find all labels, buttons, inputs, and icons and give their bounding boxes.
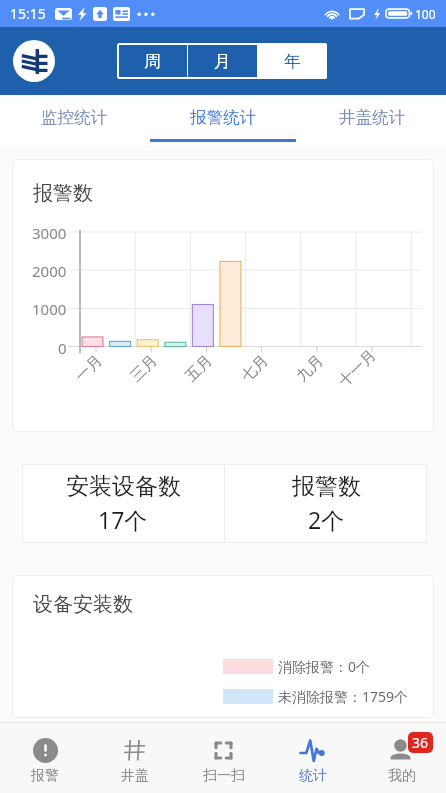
staticText: 报警 [31,767,59,785]
staticText: 周 [144,51,161,72]
button[interactable]: 监控统计 [0,95,148,145]
staticText: 设备安装数 [33,592,133,617]
staticText: 2个 [308,504,345,535]
staticText: 井盖统计 [339,107,405,128]
staticText: 年 [284,51,301,72]
button[interactable]: 井盖统计 [297,95,446,145]
button[interactable]: 报警统计 [148,95,297,145]
staticText: 五月 [182,351,216,386]
staticText: 三月 [127,351,161,386]
staticText: 3000 [32,223,67,243]
staticText: 七月 [238,351,272,386]
button[interactable]: 月 [188,43,257,79]
staticText: 2000 [32,261,67,281]
button[interactable]: 报警数 [225,464,427,543]
staticText: 15:15 [10,4,46,23]
staticText: 统计 [299,767,327,785]
staticText: 井盖 [121,767,149,785]
staticText: 扫一扫 [203,767,245,785]
staticText: 我的 [388,767,416,785]
staticText: 安装设备数 [66,472,181,501]
button[interactable]: Profile [357,722,446,793]
staticText: 十一月 [335,346,380,391]
staticText: 九月 [293,351,327,386]
staticText: 报警数 [292,472,361,501]
staticText: 36 [412,733,429,752]
button[interactable]: 安装设备数 [22,464,224,543]
staticText: 0 [58,338,67,358]
staticText: 月 [214,51,231,72]
staticText: 100 [415,6,436,22]
staticText: 未消除报警：1759个 [278,687,409,706]
staticText: 报警统计 [190,107,256,128]
button[interactable]: 周 [117,43,187,79]
staticText: 1000 [32,299,67,319]
staticText: 17个 [98,504,148,535]
button[interactable]: Alerts [0,722,90,793]
button[interactable]: Manhole covers [90,722,179,793]
staticText: 监控统计 [41,107,107,128]
button[interactable]: Statistics [268,722,357,793]
staticText: 一月 [72,351,106,386]
staticText: 消除报警：0个 [278,657,371,676]
staticText: 报警数 [33,181,93,206]
button[interactable]: Logo [13,40,55,82]
button[interactable]: Scan [179,722,268,793]
button[interactable]: 年 [258,43,327,79]
